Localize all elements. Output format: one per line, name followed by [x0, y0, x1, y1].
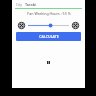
- staticText: CALCULATE: [39, 34, 59, 39]
- staticText: Fan Working Hours : 55 %: [27, 11, 71, 16]
- button[interactable]: [28, 21, 69, 30]
- staticText: Tarabi: [25, 2, 37, 7]
- button[interactable]: Decrease fan speed: [17, 21, 26, 30]
- staticText: City: [16, 2, 22, 7]
- button[interactable]: City: [15, 0, 82, 8]
- button[interactable]: Increase fan speed: [71, 21, 80, 30]
- button[interactable]: CALCULATE: [16, 32, 81, 41]
